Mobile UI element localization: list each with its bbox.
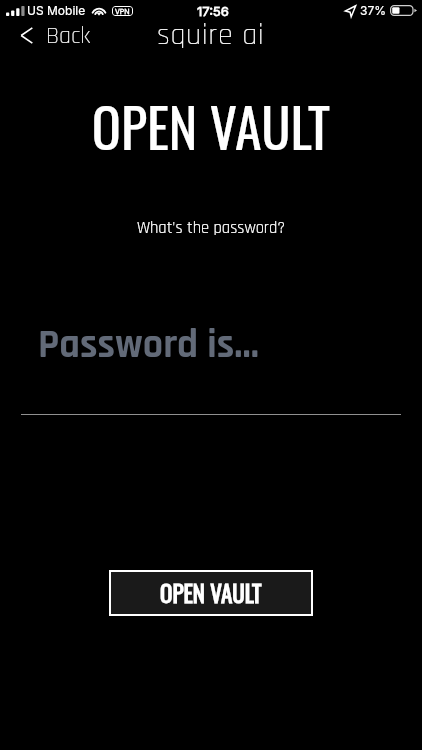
button[interactable]: Password is... (38, 320, 401, 371)
button[interactable]: OPEN VAULT (109, 570, 313, 616)
staticText: What's the password? (0, 218, 422, 239)
staticText: VPN (115, 7, 130, 15)
staticText: 17:56 (197, 3, 229, 19)
staticText: US Mobile (27, 3, 86, 18)
staticText: squire ai (157, 16, 265, 52)
staticText: OPEN VAULT (160, 576, 262, 610)
staticText: Password is... (38, 320, 259, 371)
staticText: 37% (360, 3, 386, 18)
staticText: OPEN VAULT (0, 86, 422, 166)
button[interactable]: Back (0, 17, 101, 53)
other: Back (20, 27, 33, 44)
staticText: Back (46, 21, 91, 49)
